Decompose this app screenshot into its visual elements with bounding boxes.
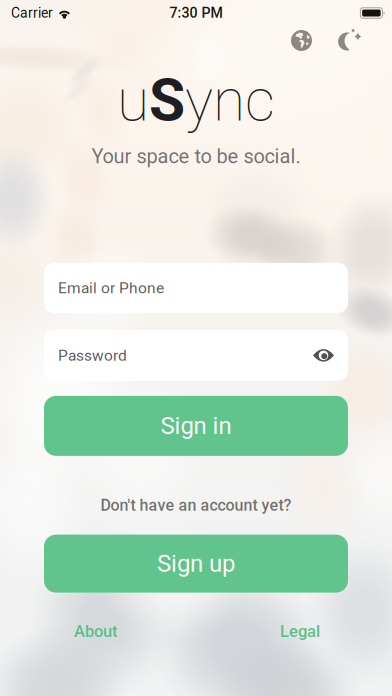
button[interactable]: About [74,622,118,641]
staticText: u [117,66,149,135]
button[interactable]: Show password [313,347,334,363]
staticText: Password [58,346,127,364]
button[interactable]: Toggle dark mode [335,25,366,56]
staticText: Sign up [157,550,235,578]
button[interactable]: Sign in [44,396,348,456]
staticText: Your space to be social. [91,145,300,168]
staticText: ync [185,66,275,135]
staticText: About [74,622,118,641]
button[interactable]: Legal [280,622,320,641]
staticText: Don't have an account yet? [100,496,291,515]
staticText: Carrier [11,5,53,21]
staticText: Legal [280,622,320,641]
button[interactable]: Change language [287,26,316,55]
staticText: Sign in [160,412,231,440]
button[interactable]: Sign up [44,535,348,593]
staticText: S [149,66,185,135]
staticText: 7:30 PM [169,5,222,21]
staticText: Email or Phone [58,279,164,297]
